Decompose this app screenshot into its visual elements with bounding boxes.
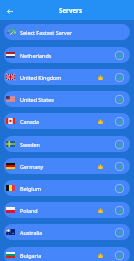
staticText: Belgium [20, 185, 42, 192]
staticText: Sweden [20, 141, 40, 148]
staticText: Canada [20, 118, 40, 125]
staticText: Servers [59, 6, 82, 14]
button[interactable]: Australia [4, 224, 130, 240]
button[interactable]: Select Fastest Server [4, 24, 130, 40]
staticText: Australia [20, 229, 43, 236]
staticText: Germany [20, 163, 44, 170]
button[interactable]: Canada [4, 113, 130, 129]
button[interactable]: Germany [4, 158, 130, 174]
button[interactable]: Back [2, 2, 18, 18]
button[interactable]: Belgium [4, 180, 130, 196]
button[interactable]: Bulgaria [4, 247, 130, 261]
button[interactable]: Netherlands [4, 47, 130, 63]
staticText: Select Fastest Server [20, 29, 72, 36]
staticText: Poland [20, 207, 38, 214]
staticText: Netherlands [20, 52, 52, 59]
button[interactable]: United States [4, 91, 130, 107]
staticText: United States [20, 96, 54, 103]
button[interactable]: United Kingdom [4, 69, 130, 85]
staticText: United Kingdom [20, 74, 62, 81]
staticText: Bulgaria [20, 252, 42, 259]
button[interactable]: Sweden [4, 136, 130, 152]
button[interactable]: Poland [4, 202, 130, 218]
